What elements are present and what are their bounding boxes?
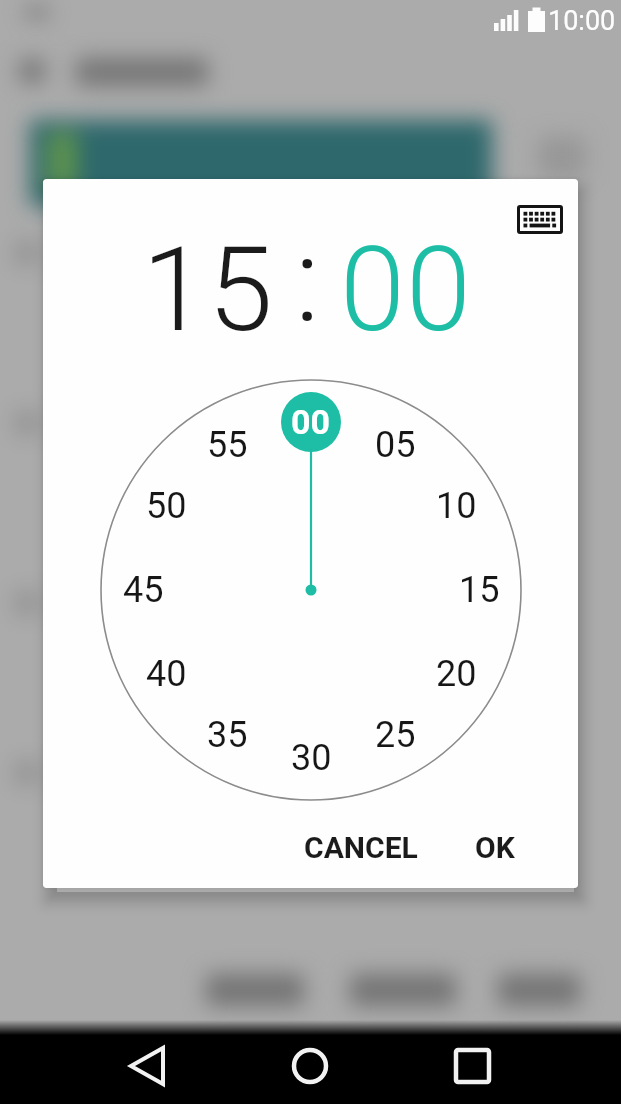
button[interactable]: OK	[450, 819, 540, 875]
staticText: CANCEL	[304, 830, 418, 865]
button[interactable]	[207, 1020, 414, 1104]
button[interactable]: 10	[416, 476, 496, 536]
button[interactable]: 30	[271, 728, 351, 788]
staticText: 00	[340, 221, 473, 358]
button[interactable]: 35	[187, 705, 267, 765]
staticText: 30	[291, 737, 332, 779]
staticText: 20	[436, 653, 477, 695]
button[interactable]: 50	[126, 476, 206, 536]
button[interactable]	[511, 199, 569, 239]
button[interactable]: 00	[271, 392, 351, 452]
button[interactable]: 15	[439, 560, 519, 620]
staticText: 15	[459, 569, 500, 611]
button[interactable]	[414, 1020, 621, 1104]
staticText: 45	[123, 569, 164, 611]
button[interactable]: 55	[187, 415, 267, 475]
staticText: 05	[375, 424, 416, 466]
staticText: 25	[375, 714, 416, 756]
button[interactable]: 25	[355, 705, 435, 765]
staticText: 40	[146, 653, 187, 695]
staticText: OK	[475, 830, 515, 865]
button[interactable]	[0, 1020, 207, 1104]
staticText: 15	[142, 221, 275, 358]
button[interactable]: 40	[126, 644, 206, 704]
button[interactable]: CANCEL	[296, 819, 426, 875]
staticText: 10:00	[548, 5, 616, 37]
button[interactable]: 45	[103, 560, 183, 620]
staticText: 10	[436, 485, 477, 527]
staticText: :	[295, 211, 320, 348]
button[interactable]: 05	[355, 415, 435, 475]
button[interactable]: 20	[416, 644, 496, 704]
staticText: 00	[291, 402, 331, 442]
staticText: 35	[207, 714, 248, 756]
staticText: 50	[146, 485, 187, 527]
staticText: 55	[207, 424, 248, 466]
